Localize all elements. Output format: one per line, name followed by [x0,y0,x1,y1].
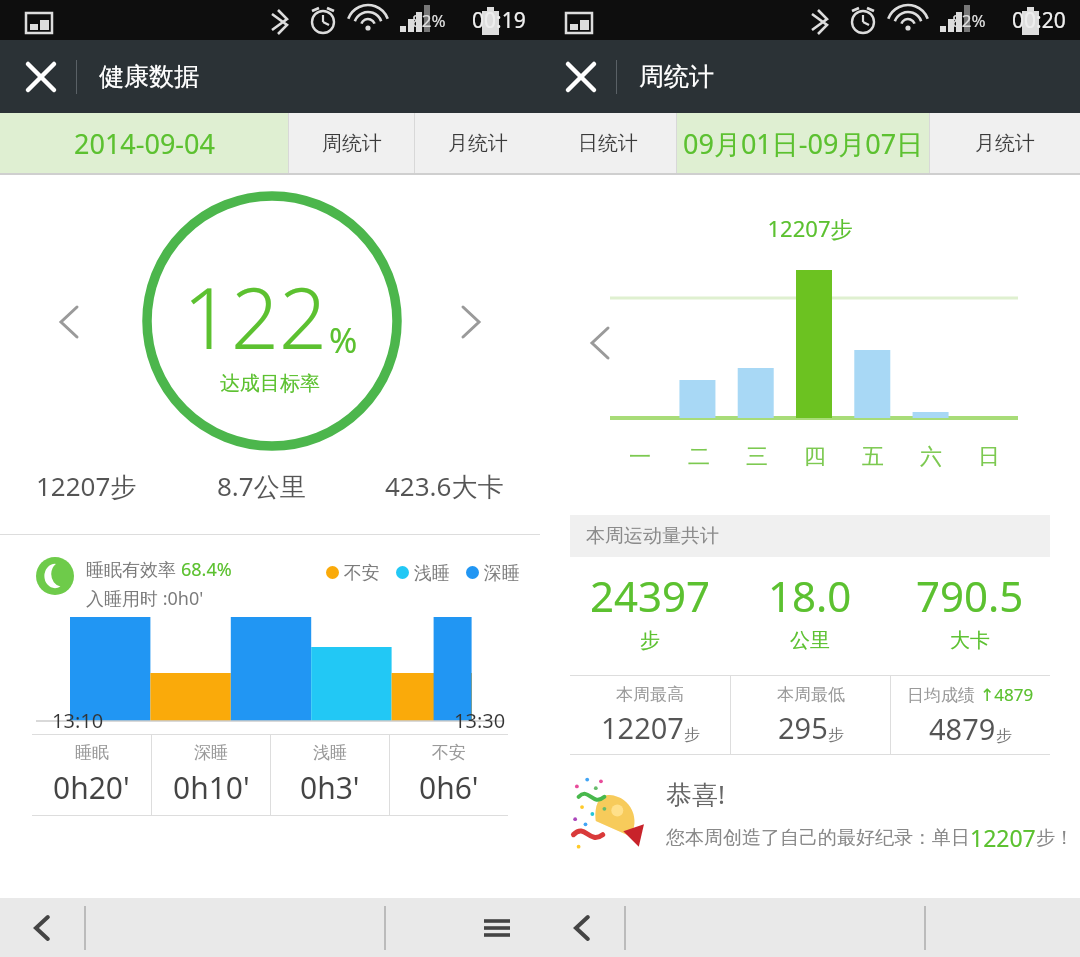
staticText: 入睡用时 :0h0' [86,586,204,611]
button[interactable]: Menu [454,898,540,957]
staticText: 0h20' [53,767,130,808]
staticText: % [329,317,358,363]
button[interactable]: Close [550,46,612,108]
staticText: 浅睡 [409,560,450,585]
staticText: 82% [952,9,986,32]
staticText: 三 [746,443,768,471]
staticText: 12207 [601,708,684,747]
staticText: 浅睡 [313,742,347,763]
button[interactable]: 月统计 [415,113,540,173]
staticText: 24397 [590,567,711,624]
staticText: 12207 [970,822,1036,853]
button[interactable]: 日统计 [540,113,676,173]
staticText: 日统计 [578,131,638,156]
staticText: 达成目标率 [220,371,320,396]
staticText: 295 [778,708,828,747]
staticText: 本周最低 [777,684,845,705]
staticText: 不安 [432,742,466,763]
button[interactable]: 09月01日-09月07日 [677,113,929,173]
staticText: 不安 [339,560,380,585]
staticText: 4879 [929,709,996,748]
staticText: 13:10 [52,707,104,734]
button[interactable]: 周统计 [289,113,414,173]
staticText: 0h3' [300,767,360,808]
staticText: 您本周创造了自己的最好纪录：单日 [666,826,970,850]
staticText: 18.0 [768,567,852,624]
staticText: 一 [629,443,651,471]
staticText: 日均成绩 [907,683,980,706]
staticText: 2014-09-04 [74,125,215,162]
staticText: 09月01日-09月07日 [683,125,924,162]
staticText: 睡眠 [75,742,109,763]
staticText: ↑4879 [980,683,1034,706]
staticText: 122 [183,259,327,373]
staticText: 六 [920,443,942,471]
staticText: 82% [412,9,446,32]
staticText: 恭喜! [666,776,725,812]
staticText: 0h10' [173,767,250,808]
staticText: 步 [828,725,844,745]
staticText: 公里 [790,628,830,653]
staticText: 423.6大卡 [385,468,504,504]
button[interactable]: Close [10,46,72,108]
staticText: 步 [996,726,1012,746]
staticText: 步 [640,628,660,653]
staticText: 步！ [1036,826,1074,850]
staticText: 大卡 [950,628,990,653]
staticText: 周统计 [639,61,714,92]
staticText: 8.7公里 [217,468,306,504]
staticText: 日 [978,443,1000,471]
staticText: 二 [688,443,710,471]
staticText: 00:19 [472,6,526,35]
button[interactable]: 2014-09-04 [0,113,288,173]
staticText: 790.5 [916,567,1024,624]
staticText: 月统计 [448,131,508,156]
staticText: 周统计 [322,131,382,156]
staticText: 四 [804,443,826,471]
button[interactable]: Previous week [574,317,626,369]
staticText: 本周最高 [616,684,684,705]
staticText: 步 [684,725,700,745]
staticText: 13:30 [454,707,506,734]
button[interactable]: Next day [442,293,500,351]
button[interactable]: Previous day [40,293,98,351]
staticText: 00:20 [1012,6,1066,35]
staticText: 本周运动量共计 [586,524,719,548]
staticText: 0h6' [419,767,479,808]
staticText: 睡眠有效率 [86,557,181,582]
staticText: 12207步 [540,213,1080,243]
staticText: 健康数据 [99,61,199,92]
button[interactable]: Back [540,898,626,957]
button[interactable]: Back [0,898,86,957]
staticText: 深睡 [479,560,520,585]
staticText: 深睡 [194,742,228,763]
staticText: 月统计 [975,131,1035,156]
staticText: 五 [862,443,884,471]
staticText: 12207步 [36,468,137,504]
staticText: 68.4% [181,557,232,582]
button[interactable]: 月统计 [930,113,1080,173]
